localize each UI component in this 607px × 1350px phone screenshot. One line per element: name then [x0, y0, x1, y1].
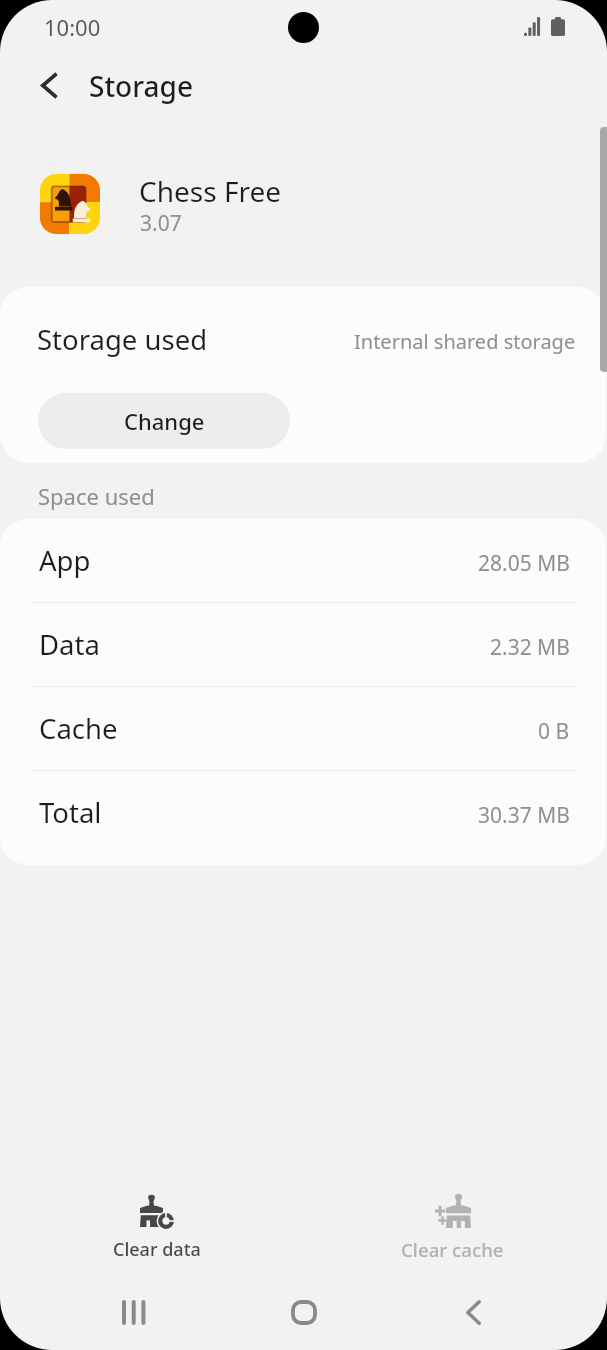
- button[interactable]: App: [0, 519, 606, 602]
- staticText: 2.32 MB: [490, 633, 570, 662]
- staticText: 10:00: [44, 12, 101, 42]
- staticText: 0 B: [538, 717, 570, 746]
- staticText: Storage: [89, 67, 193, 105]
- button[interactable]: Data: [0, 602, 606, 686]
- button[interactable]: Cache: [0, 686, 606, 770]
- button[interactable]: Home: [264, 1285, 343, 1339]
- staticText: Storage used: [37, 321, 208, 358]
- staticText: Internal shared storage: [354, 328, 576, 355]
- other: Clear data: [140, 1194, 175, 1229]
- staticText: Clear data: [113, 1237, 201, 1262]
- staticText: 28.05 MB: [478, 549, 570, 578]
- staticText: Chess Free: [139, 172, 282, 210]
- staticText: Space used: [38, 481, 155, 511]
- staticText: App: [39, 542, 91, 579]
- other: Clear cache: [433, 1193, 471, 1228]
- button[interactable]: Change: [38, 393, 290, 449]
- staticText: Change: [124, 406, 205, 436]
- button[interactable]: Navigate up: [25, 61, 73, 109]
- staticText: 30.37 MB: [478, 801, 570, 830]
- button[interactable]: Back: [434, 1285, 513, 1339]
- button[interactable]: Clear cache: [318, 1176, 583, 1264]
- staticText: Data: [39, 626, 100, 663]
- button[interactable]: Recent apps: [94, 1285, 173, 1339]
- staticText: Clear cache: [401, 1237, 504, 1262]
- staticText: Cache: [39, 710, 118, 747]
- staticText: Total: [39, 794, 102, 831]
- staticText: 3.07: [140, 209, 182, 238]
- button[interactable]: Total: [0, 770, 606, 865]
- button[interactable]: Clear data: [24, 1176, 289, 1264]
